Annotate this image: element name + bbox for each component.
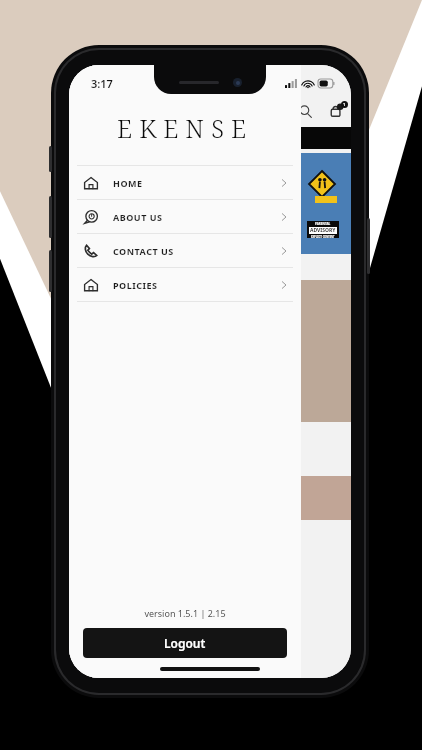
staticText: 3:17 <box>91 76 113 91</box>
staticText: EKENSE <box>117 111 254 145</box>
staticText: POLICIES <box>113 279 158 291</box>
staticText: ADVISORY <box>310 227 336 234</box>
staticText: ABOUT US <box>113 211 163 223</box>
staticText: HOME <box>113 177 143 189</box>
button[interactable]: Logout <box>83 628 287 658</box>
button[interactable]: Cart <box>323 98 349 124</box>
staticText: CONTACT US <box>113 245 174 257</box>
staticText: PARENTAL <box>315 222 331 226</box>
staticText: EXPLICIT CONTENT <box>311 235 335 238</box>
button[interactable]: HOME <box>69 166 301 199</box>
button[interactable]: ABOUT US <box>69 200 301 233</box>
button[interactable]: POLICIES <box>69 268 301 301</box>
button[interactable]: Search <box>293 99 317 123</box>
button[interactable]: CONTACT US <box>69 234 301 267</box>
staticText: Logout <box>164 635 206 651</box>
staticText: 1 <box>343 102 346 107</box>
staticText: version 1.5.1 | 2.15 <box>69 607 301 619</box>
